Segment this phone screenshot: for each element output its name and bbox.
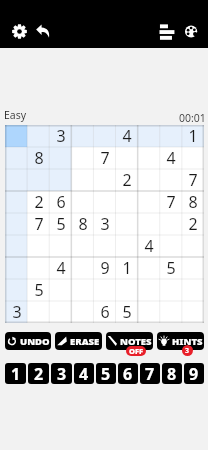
button[interactable] <box>138 257 160 279</box>
button[interactable]: 7 <box>94 147 116 169</box>
button[interactable] <box>138 125 160 147</box>
button[interactable] <box>138 301 160 323</box>
button[interactable] <box>50 147 72 169</box>
button[interactable]: 5 <box>28 279 50 301</box>
button[interactable]: 8 <box>162 363 182 384</box>
staticText: 7 <box>100 147 110 169</box>
button[interactable]: 6 <box>50 191 72 213</box>
button[interactable] <box>5 169 28 191</box>
button[interactable] <box>182 257 204 279</box>
button[interactable] <box>94 191 116 213</box>
button[interactable]: 2 <box>28 363 49 384</box>
button[interactable] <box>5 235 28 257</box>
button[interactable] <box>50 301 72 323</box>
button[interactable]: 4 <box>50 257 72 279</box>
button[interactable]: HINTS <box>157 332 204 350</box>
button[interactable]: 3 <box>50 125 72 147</box>
button[interactable]: 2 <box>182 213 204 235</box>
button[interactable] <box>5 279 28 301</box>
button[interactable] <box>28 169 50 191</box>
button[interactable] <box>138 147 160 169</box>
button[interactable] <box>116 279 138 301</box>
button[interactable] <box>182 235 204 257</box>
staticText: OFF <box>129 346 144 356</box>
button[interactable]: 7 <box>182 169 204 191</box>
button[interactable] <box>50 235 72 257</box>
button[interactable]: 4 <box>138 235 160 257</box>
button[interactable]: 7 <box>160 191 182 213</box>
button[interactable]: 5 <box>160 257 182 279</box>
button[interactable] <box>72 169 94 191</box>
button[interactable]: 3 <box>51 363 72 384</box>
button[interactable]: 7 <box>28 213 50 235</box>
button[interactable] <box>160 235 182 257</box>
button[interactable] <box>138 279 160 301</box>
button[interactable]: 5 <box>116 301 138 323</box>
button[interactable]: 8 <box>28 147 50 169</box>
button[interactable] <box>138 169 160 191</box>
button[interactable] <box>28 257 50 279</box>
button[interactable] <box>116 213 138 235</box>
button[interactable] <box>28 235 50 257</box>
button[interactable] <box>50 169 72 191</box>
button[interactable]: 2 <box>28 191 50 213</box>
button[interactable] <box>116 147 138 169</box>
button[interactable] <box>5 257 28 279</box>
button[interactable]: 2 <box>116 169 138 191</box>
button[interactable]: 1 <box>5 363 26 384</box>
button[interactable]: 3 <box>94 213 116 235</box>
button[interactable]: 1 <box>182 125 204 147</box>
button[interactable]: 4 <box>160 147 182 169</box>
button[interactable] <box>94 125 116 147</box>
button[interactable] <box>160 301 182 323</box>
button[interactable] <box>72 279 94 301</box>
button[interactable]: Theme <box>179 14 203 48</box>
button[interactable] <box>182 301 204 323</box>
button[interactable]: 5 <box>50 213 72 235</box>
button[interactable] <box>94 235 116 257</box>
button[interactable] <box>138 213 160 235</box>
button[interactable] <box>50 279 72 301</box>
button[interactable]: Undo <box>31 14 55 48</box>
button[interactable] <box>160 125 182 147</box>
button[interactable] <box>160 169 182 191</box>
button[interactable] <box>138 191 160 213</box>
button[interactable] <box>72 191 94 213</box>
button[interactable]: 9 <box>94 257 116 279</box>
button[interactable] <box>116 235 138 257</box>
button[interactable]: Difficulty <box>154 14 179 48</box>
button[interactable]: 9 <box>184 363 204 384</box>
button[interactable]: 1 <box>116 257 138 279</box>
button[interactable]: 4 <box>116 125 138 147</box>
button[interactable]: NOTES <box>106 332 153 350</box>
button[interactable] <box>5 213 28 235</box>
button[interactable]: 7 <box>140 363 160 384</box>
button[interactable] <box>5 191 28 213</box>
button[interactable] <box>160 213 182 235</box>
button[interactable] <box>72 125 94 147</box>
button[interactable] <box>94 169 116 191</box>
button[interactable]: Settings <box>7 14 31 48</box>
button[interactable]: 4 <box>74 363 94 384</box>
button[interactable]: 8 <box>182 191 204 213</box>
button[interactable]: ERASE <box>55 332 102 350</box>
button[interactable]: 3 <box>5 301 28 323</box>
button[interactable] <box>182 147 204 169</box>
button[interactable] <box>28 125 50 147</box>
button[interactable] <box>72 257 94 279</box>
button[interactable]: 8 <box>72 213 94 235</box>
button[interactable] <box>116 191 138 213</box>
button[interactable]: 5 <box>96 363 116 384</box>
button[interactable]: UNDO <box>5 332 51 350</box>
button[interactable] <box>72 301 94 323</box>
button[interactable] <box>160 279 182 301</box>
button[interactable]: 6 <box>94 301 116 323</box>
button[interactable]: 6 <box>118 363 138 384</box>
button[interactable] <box>94 279 116 301</box>
button[interactable] <box>5 147 28 169</box>
button[interactable] <box>28 301 50 323</box>
button[interactable] <box>72 235 94 257</box>
button[interactable] <box>5 125 28 147</box>
button[interactable] <box>72 147 94 169</box>
button[interactable] <box>182 279 204 301</box>
